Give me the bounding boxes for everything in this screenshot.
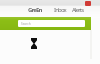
staticText: GreEn [28, 6, 42, 14]
staticText: Alerts [72, 6, 84, 14]
button[interactable]: Inbox [54, 6, 66, 14]
staticText: Inbox [54, 6, 66, 14]
button[interactable]: Alerts [72, 6, 84, 14]
button[interactable]: Search [18, 20, 85, 27]
staticText: Search [21, 22, 31, 26]
button[interactable]: GreEn [28, 6, 42, 14]
button[interactable]: Notifications [85, 1, 91, 6]
